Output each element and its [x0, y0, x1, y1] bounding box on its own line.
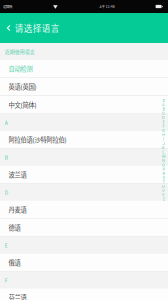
staticText: U — [162, 184, 165, 189]
staticText: B — [5, 154, 8, 161]
staticText: L — [162, 150, 164, 154]
staticText: D — [162, 115, 165, 120]
staticText: R — [162, 171, 164, 176]
staticText: O — [162, 163, 165, 167]
button[interactable]: 德语 — [0, 219, 168, 237]
staticText: Z — [162, 197, 164, 202]
staticText: S — [162, 176, 164, 180]
staticText: I — [163, 137, 164, 141]
staticText: 俄语 — [8, 258, 20, 267]
staticText: 近期使用语言 — [5, 48, 35, 55]
staticText: 英语(英国) — [8, 82, 36, 91]
staticText: A — [5, 119, 8, 126]
staticText: V — [162, 189, 165, 193]
staticText: A — [162, 103, 165, 107]
staticText: F — [162, 124, 164, 129]
staticText: Y — [162, 193, 165, 197]
button[interactable]: 阿拉伯语(沙特阿拉伯) — [0, 131, 168, 149]
staticText: 中文(简体) — [8, 100, 36, 109]
staticText: B — [162, 107, 164, 111]
staticText: 波兰语 — [8, 170, 26, 179]
staticText: 德语 — [8, 223, 20, 232]
staticText: T — [162, 180, 164, 184]
staticText: N — [162, 158, 165, 163]
staticText: M — [162, 154, 165, 159]
staticText: H — [162, 133, 165, 137]
staticText: # — [162, 98, 164, 103]
staticText: P — [162, 167, 164, 172]
staticText: F — [5, 276, 8, 284]
staticText: G — [162, 128, 165, 133]
button[interactable]: 自动检测 — [0, 60, 168, 78]
staticText: 请选择语言 — [15, 22, 60, 34]
button[interactable]: 英语(英国) — [0, 78, 168, 96]
button[interactable]: 中文(简体) — [0, 96, 168, 114]
button[interactable]: 芬兰语 — [0, 289, 168, 300]
button[interactable]: 俄语 — [0, 254, 168, 272]
button[interactable]: 丹麦语 — [0, 201, 168, 219]
staticText: 丹麦语 — [8, 205, 26, 214]
staticText: D — [5, 189, 8, 196]
staticText: 阿拉伯语(沙特阿拉伯) — [8, 135, 66, 144]
staticText: 上午 11:48 — [99, 4, 115, 9]
staticText: J — [162, 141, 164, 146]
button[interactable]: Back — [0, 13, 15, 43]
staticText: C — [162, 111, 165, 116]
staticText: E — [162, 120, 164, 124]
staticText: 运营商 — [3, 4, 12, 9]
button[interactable]: 波兰语 — [0, 166, 168, 184]
staticText: K — [162, 146, 165, 150]
staticText: 芬兰语 — [8, 293, 26, 300]
staticText: E — [5, 242, 8, 249]
staticText: 自动检测 — [8, 64, 32, 73]
